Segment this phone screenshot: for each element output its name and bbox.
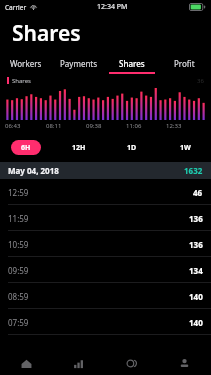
button[interactable]: Workers bbox=[0, 52, 52, 74]
button[interactable]: 6H bbox=[11, 140, 41, 155]
staticText: Payments bbox=[60, 58, 98, 69]
staticText: 10:59 bbox=[8, 239, 29, 250]
staticText: Shares bbox=[12, 77, 31, 85]
staticText: 12:59 bbox=[8, 187, 29, 198]
button[interactable]: 12H bbox=[64, 140, 94, 155]
button[interactable]: 12:59 bbox=[0, 179, 211, 205]
staticText: 1632 bbox=[184, 165, 203, 176]
button[interactable]: Profit bbox=[158, 52, 211, 74]
staticText: 12:34 PM bbox=[97, 2, 128, 12]
button[interactable]: 11:59 bbox=[0, 205, 211, 231]
staticText: 134 bbox=[189, 265, 203, 276]
button[interactable]: Payments bbox=[52, 52, 105, 74]
button[interactable]: Shares bbox=[105, 52, 158, 74]
staticText: Workers bbox=[10, 58, 42, 69]
staticText: 06:43 bbox=[5, 122, 21, 130]
staticText: 09:38 bbox=[86, 122, 102, 130]
staticText: 136 bbox=[189, 239, 203, 250]
staticText: 1W bbox=[180, 143, 191, 153]
button[interactable]: Home bbox=[0, 351, 52, 375]
staticText: 12H bbox=[72, 143, 86, 153]
staticText: Carrier bbox=[5, 3, 27, 12]
staticText: 36 bbox=[197, 77, 204, 85]
staticText: Shares bbox=[119, 58, 145, 69]
button[interactable]: 07:59 bbox=[0, 309, 211, 335]
staticText: May 04, 2018 bbox=[8, 165, 59, 176]
staticText: 1D bbox=[127, 143, 137, 153]
button[interactable]: Payments bbox=[105, 351, 158, 375]
button[interactable]: 09:59 bbox=[0, 257, 211, 283]
staticText: 08:59 bbox=[8, 291, 29, 302]
staticText: Shares bbox=[12, 19, 81, 48]
staticText: 07:59 bbox=[8, 317, 29, 328]
staticText: 46 bbox=[193, 187, 203, 198]
staticText: Profit bbox=[174, 58, 195, 69]
button[interactable]: 1D bbox=[117, 140, 147, 155]
staticText: 09:59 bbox=[8, 265, 29, 276]
staticText: 140 bbox=[189, 291, 203, 302]
staticText: 140 bbox=[189, 317, 203, 328]
staticText: 6H bbox=[21, 143, 31, 153]
staticText: 11:06 bbox=[126, 122, 142, 130]
staticText: 136 bbox=[189, 213, 203, 224]
staticText: 11:59 bbox=[8, 213, 29, 224]
button[interactable]: 1W bbox=[170, 140, 200, 155]
button[interactable]: 08:59 bbox=[0, 283, 211, 309]
button[interactable]: Statistics bbox=[52, 351, 105, 375]
button[interactable]: Profile bbox=[158, 351, 211, 375]
staticText: 12:33 bbox=[166, 122, 182, 130]
button[interactable]: 10:59 bbox=[0, 231, 211, 257]
staticText: 08:11 bbox=[46, 122, 62, 130]
